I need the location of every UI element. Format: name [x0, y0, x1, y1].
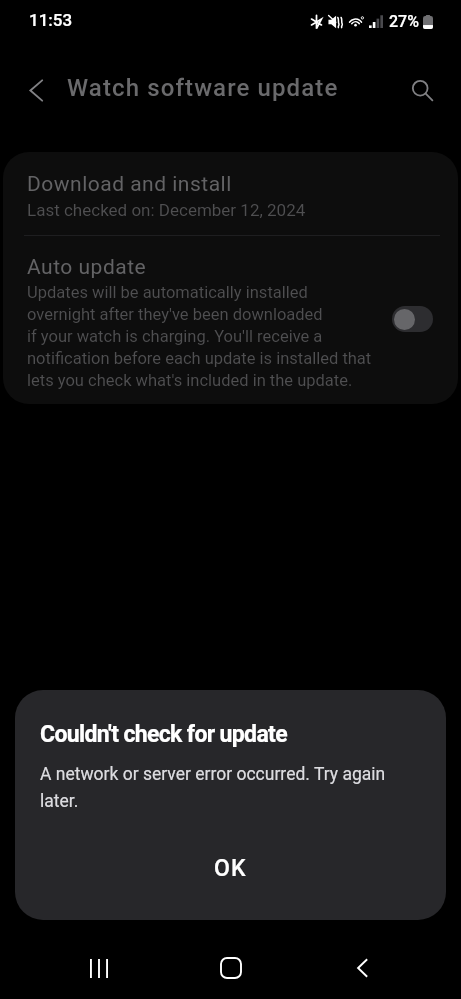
button[interactable]: Download and install: [3, 152, 458, 235]
button[interactable]: Auto update: [3, 236, 458, 404]
staticText: Updates will be automatically installed …: [27, 283, 372, 390]
staticText: Watch software update: [67, 74, 339, 102]
staticText: Couldn't check for update: [40, 721, 288, 748]
button[interactable]: Search: [400, 68, 444, 112]
staticText: 27%: [389, 12, 419, 31]
button[interactable]: Auto update toggle: [392, 306, 433, 332]
button[interactable]: Home: [199, 937, 263, 999]
button[interactable]: Back: [14, 68, 58, 112]
staticText: Download and install: [27, 172, 232, 197]
button[interactable]: Back: [330, 937, 394, 999]
staticText: OK: [214, 855, 247, 882]
staticText: Auto update: [27, 255, 147, 280]
staticText: A network or server error occurred. Try …: [40, 764, 386, 812]
staticText: Last checked on: December 12, 2024: [27, 200, 306, 220]
button[interactable]: OK: [15, 837, 446, 899]
staticText: 11:53: [29, 10, 73, 30]
button[interactable]: Recents: [67, 937, 131, 999]
